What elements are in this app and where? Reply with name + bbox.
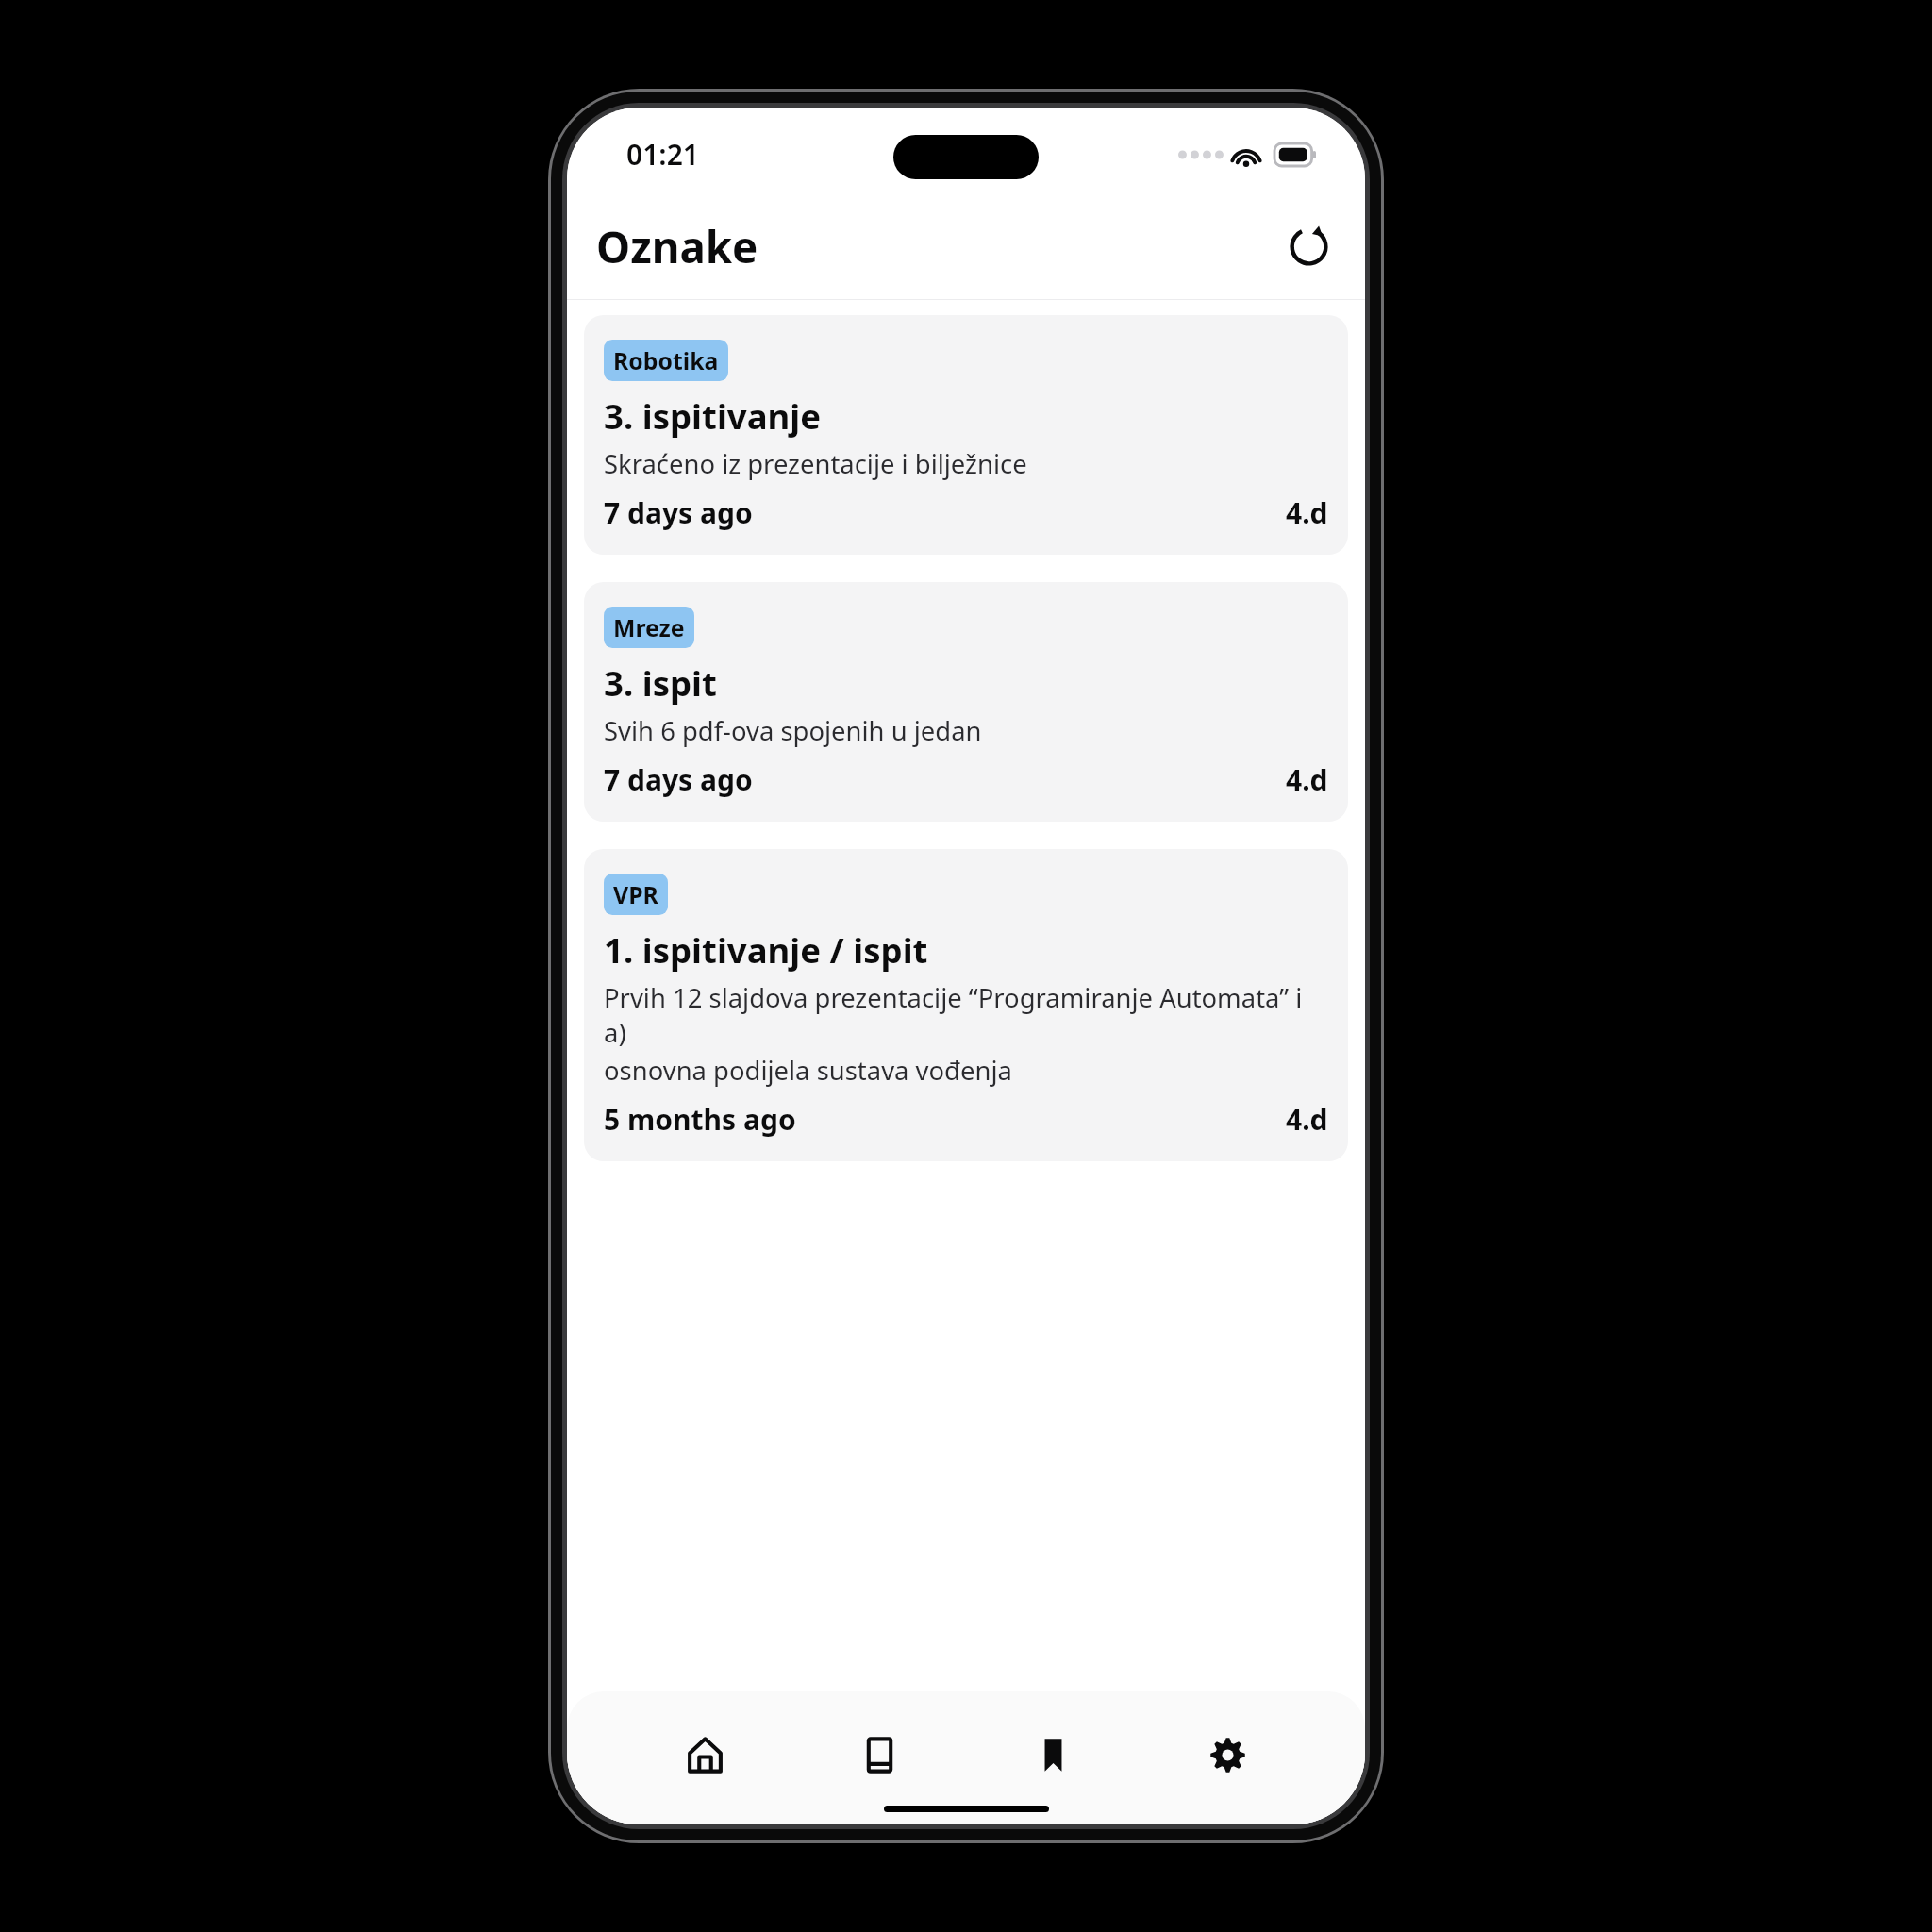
staticText: 5 months ago: [604, 1100, 796, 1139]
staticText: 4.d: [1286, 1100, 1328, 1139]
staticText: 4.d: [1286, 760, 1328, 799]
staticText: Robotika: [613, 344, 719, 376]
staticText: VPR: [613, 878, 658, 910]
staticText: 7 days ago: [604, 493, 753, 532]
staticText: Mreze: [613, 611, 685, 643]
staticText: 1. ispitivanje / ispit: [604, 926, 928, 974]
button[interactable]: Library: [843, 1719, 915, 1790]
staticText: 01:21: [626, 135, 700, 174]
button[interactable]: Settings: [1191, 1719, 1263, 1790]
button[interactable]: Home: [669, 1719, 741, 1790]
staticText: 3. ispitivanje: [604, 392, 822, 440]
staticText: osnovna podijela sustava vođenja: [604, 1053, 1012, 1088]
button[interactable]: Robotika: [584, 315, 1348, 555]
staticText: Oznake: [596, 217, 758, 275]
staticText: Svih 6 pdf-ova spojenih u jedan: [604, 713, 982, 748]
staticText: 3. ispit: [604, 659, 717, 707]
staticText: 7 days ago: [604, 760, 753, 799]
button[interactable]: Refresh: [1275, 213, 1342, 280]
button[interactable]: Bookmarks: [1017, 1719, 1089, 1790]
button[interactable]: VPR: [584, 849, 1348, 1161]
staticText: Prvih 12 slajdova prezentacije “Programi…: [604, 980, 1328, 1050]
button[interactable]: Mreze: [584, 582, 1348, 822]
staticText: Skraćeno iz prezentacije i bilježnice: [604, 446, 1027, 481]
staticText: 4.d: [1286, 493, 1328, 532]
